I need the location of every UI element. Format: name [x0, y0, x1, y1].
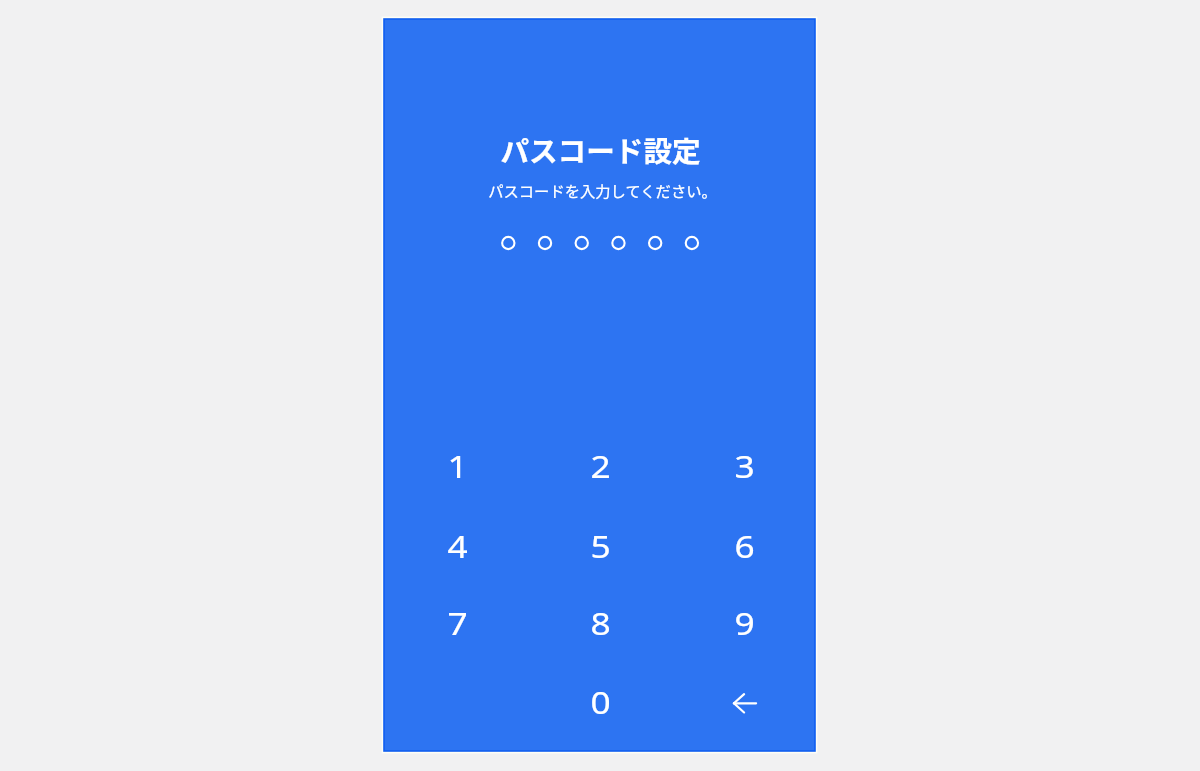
- staticText: 6: [734, 526, 755, 566]
- button[interactable]: 8: [527, 584, 671, 662]
- button[interactable]: 6: [671, 507, 815, 585]
- staticText: 4: [447, 526, 468, 566]
- staticText: 8: [590, 603, 611, 643]
- staticText: 7: [447, 603, 468, 643]
- button[interactable]: 5: [527, 507, 671, 585]
- staticText: パスコードを入力してください。: [488, 179, 717, 201]
- button[interactable]: 9: [671, 584, 815, 662]
- staticText: 2: [590, 446, 611, 486]
- button[interactable]: 1: [384, 427, 527, 505]
- staticText: 1: [447, 446, 468, 486]
- staticText: 9: [734, 603, 755, 643]
- button[interactable]: 2: [527, 427, 671, 505]
- button[interactable]: 7: [384, 584, 527, 662]
- button[interactable]: Backspace: [671, 663, 815, 741]
- staticText: 5: [590, 526, 611, 566]
- button[interactable]: 0: [527, 663, 671, 741]
- staticText: 0: [590, 682, 611, 722]
- button[interactable]: 4: [384, 507, 527, 585]
- staticText: 3: [734, 446, 755, 486]
- staticText: パスコード設定: [500, 129, 701, 170]
- button[interactable]: 3: [671, 427, 815, 505]
